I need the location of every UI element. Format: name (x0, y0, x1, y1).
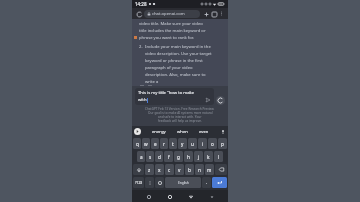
staticText: feedback will help us improve. (158, 119, 202, 123)
button[interactable]: Reload (135, 10, 143, 18)
staticText: y (181, 141, 184, 147)
button[interactable]: e (151, 138, 159, 149)
staticText: n (198, 167, 201, 173)
staticText: ChatGPT Feb 13 Version. Free Research Pr… (145, 107, 215, 111)
button[interactable]: ?123 (133, 177, 144, 188)
button[interactable]: s (146, 151, 154, 162)
button[interactable]: Back (186, 192, 195, 201)
staticText: even (199, 129, 209, 135)
button[interactable]: u (188, 138, 197, 149)
staticText: 2. (139, 44, 143, 50)
staticText: phrase you want to rank for. (139, 35, 194, 41)
staticText: c (168, 167, 171, 173)
staticText: w (144, 141, 148, 147)
staticText: energy (152, 129, 166, 135)
staticText: b (188, 167, 191, 173)
staticText: paragraph of your video (145, 65, 193, 71)
staticText: o (211, 141, 214, 147)
staticText: and safe to interact with. Your (158, 115, 202, 119)
staticText: m (207, 167, 212, 173)
staticText: title includes the main keyword or (139, 28, 206, 34)
button[interactable] (215, 164, 227, 175)
button[interactable] (133, 164, 144, 175)
staticText: p (221, 141, 224, 147)
button[interactable]: v (175, 164, 184, 175)
staticText: r (163, 141, 165, 147)
button[interactable]: Regenerate (216, 96, 225, 105)
staticText: . (206, 180, 208, 185)
button[interactable]: y (178, 138, 187, 149)
button[interactable]: w (142, 138, 150, 149)
staticText: when (177, 129, 188, 135)
button[interactable]: q (133, 138, 141, 149)
staticText: 14:28 (135, 1, 147, 7)
button[interactable]: h (184, 151, 193, 162)
button[interactable]: j (194, 151, 203, 162)
staticText: f (168, 154, 170, 160)
button[interactable]: Voice input (220, 129, 226, 135)
button[interactable]: p (218, 138, 227, 149)
button[interactable]: Recents (144, 192, 153, 201)
staticText: z (148, 167, 151, 173)
button[interactable]: Home (165, 192, 174, 201)
staticText: v (178, 167, 181, 173)
button[interactable] (145, 177, 154, 188)
button[interactable]: a (137, 151, 145, 162)
staticText: d (158, 154, 161, 160)
button[interactable]: Send (205, 97, 211, 103)
button[interactable]: x (155, 164, 164, 175)
staticText: l (218, 154, 220, 160)
staticText: English (178, 181, 189, 185)
staticText: t (172, 141, 174, 147)
button[interactable]: Tabs (210, 10, 218, 18)
button[interactable]: b (185, 164, 194, 175)
staticText: i (202, 141, 204, 147)
button[interactable]: f (164, 151, 173, 162)
button[interactable]: This is my title "how to make money (135, 88, 214, 105)
button[interactable]: g (174, 151, 183, 162)
staticText: a (140, 154, 143, 160)
button[interactable]: Google (134, 128, 141, 135)
button[interactable]: t (169, 138, 177, 149)
button[interactable]: More options (218, 10, 225, 17)
staticText: k (207, 154, 210, 160)
staticText: q (136, 141, 139, 147)
staticText: u (191, 141, 194, 147)
staticText: chat.openai.com (152, 11, 185, 17)
button[interactable]: Hide keyboard (207, 192, 216, 201)
staticText: video description. Use your target (145, 51, 212, 57)
staticText: h (187, 154, 190, 160)
button[interactable]: k (204, 151, 213, 162)
staticText: s (149, 154, 152, 160)
button[interactable]: n (195, 164, 204, 175)
button[interactable]: English (165, 177, 201, 188)
staticText: e (154, 141, 157, 147)
staticText: Include your main keyword in the (145, 44, 211, 50)
button[interactable]: l (214, 151, 223, 162)
button[interactable]: . (202, 177, 211, 188)
button[interactable]: r (160, 138, 168, 149)
button[interactable]: c (165, 164, 174, 175)
button[interactable]: New tab (202, 10, 210, 18)
staticText: x (158, 167, 161, 173)
button[interactable]: m (205, 164, 214, 175)
button[interactable]: chat.openai.com (144, 10, 200, 18)
staticText: description. Also, make sure to (145, 72, 206, 78)
button[interactable]: Enter (212, 177, 227, 188)
staticText: ?123 (135, 180, 143, 185)
staticText: with (138, 97, 147, 103)
staticText: Our goal is to make AI systems more natu… (148, 111, 213, 115)
button[interactable]: d (155, 151, 163, 162)
button[interactable]: o (208, 138, 217, 149)
staticText: g (177, 154, 180, 160)
staticText: write a (145, 79, 159, 85)
button[interactable]: z (145, 164, 154, 175)
staticText: video title. Make sure your video (139, 21, 203, 27)
button[interactable]: i (198, 138, 207, 149)
staticText: keyword or phrase in the first (145, 58, 203, 64)
button[interactable] (155, 177, 164, 188)
staticText: j (198, 154, 200, 160)
staticText: This is my title "how to make money (138, 90, 203, 96)
